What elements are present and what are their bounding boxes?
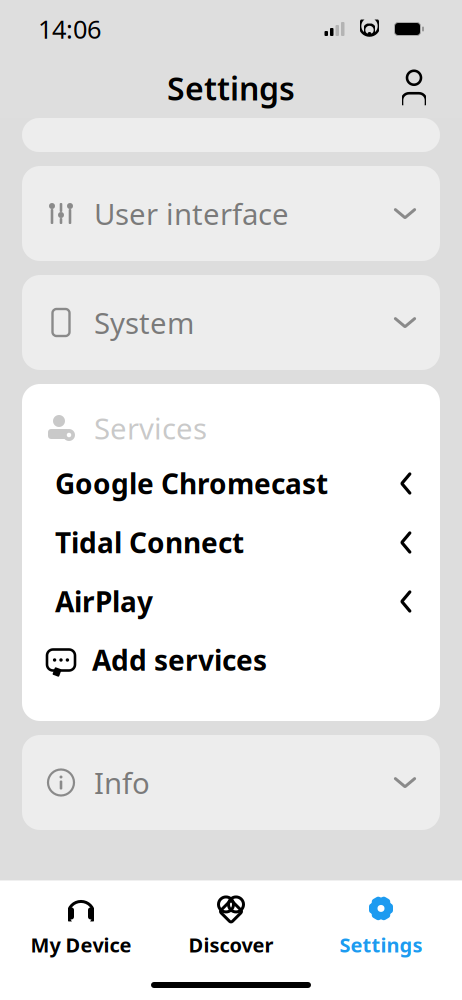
button[interactable]: Account <box>400 65 462 111</box>
staticText: 14:06 <box>38 12 101 46</box>
staticText: Services <box>94 408 207 447</box>
staticText: Discover <box>188 931 273 958</box>
button[interactable]: Google Chromecast <box>22 454 440 513</box>
button[interactable]: Tidal Connect <box>22 513 440 572</box>
button[interactable]: Add services <box>22 631 440 689</box>
staticText: User interface <box>94 194 289 233</box>
staticText: My Device <box>30 931 131 958</box>
staticText: Google Chromecast <box>55 465 328 502</box>
button[interactable]: Discover <box>156 880 306 968</box>
staticText: Info <box>94 763 150 802</box>
button[interactable]: User interface <box>22 166 440 261</box>
button[interactable]: System <box>22 275 440 370</box>
staticText: AirPlay <box>55 583 153 620</box>
staticText: Add services <box>92 641 267 679</box>
button[interactable]: Settings <box>306 880 456 968</box>
staticText: Tidal Connect <box>55 524 244 561</box>
button[interactable]: My Device <box>6 880 156 968</box>
button[interactable]: AirPlay <box>22 572 440 631</box>
staticText: Settings <box>339 931 422 958</box>
button[interactable]: Info <box>22 735 440 830</box>
staticText: Settings <box>167 67 295 109</box>
staticText: System <box>94 303 194 342</box>
